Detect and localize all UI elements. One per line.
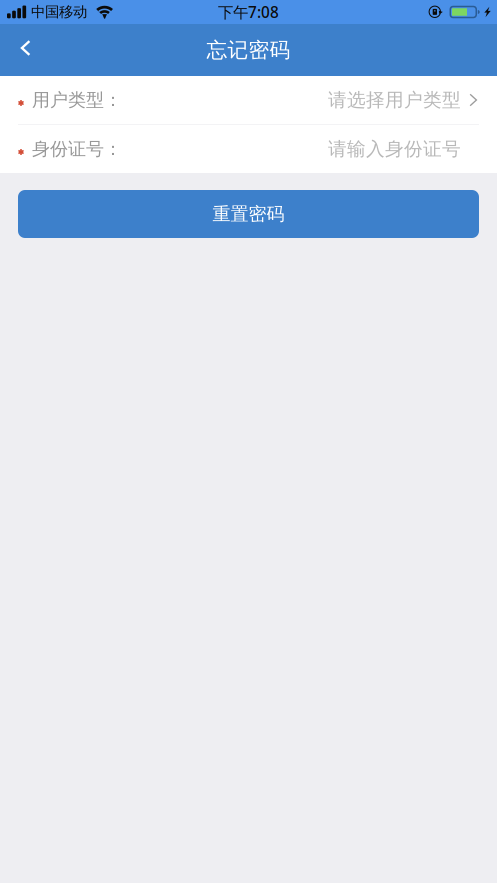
- button[interactable]: 重置密码: [18, 190, 479, 238]
- staticText: 中国移动: [31, 3, 87, 21]
- staticText: 请输入身份证号: [328, 137, 461, 160]
- button[interactable]: 用户类型：: [0, 76, 497, 124]
- button[interactable]: 身份证号：: [0, 125, 497, 173]
- staticText: 重置密码: [212, 203, 284, 225]
- staticText: 用户类型：: [32, 89, 122, 111]
- staticText: 下午7:08: [218, 2, 279, 22]
- staticText: 忘记密码: [206, 37, 290, 63]
- staticText: 请选择用户类型: [328, 88, 461, 111]
- button[interactable]: Back: [0, 24, 44, 76]
- staticText: 身份证号：: [32, 138, 122, 160]
